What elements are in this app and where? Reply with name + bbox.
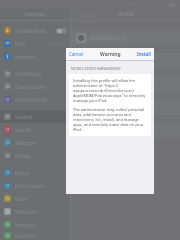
staticText: Sounds (15, 127, 31, 133)
staticText: iCloud (15, 170, 29, 176)
staticText: Installing this profile will allow the a… (73, 78, 147, 103)
button[interactable]: Do Not Disturb (0, 93, 70, 106)
button[interactable]: Control Center (0, 80, 70, 93)
staticText: The administrator may collect personal d… (73, 107, 147, 132)
button[interactable]: General (0, 110, 70, 123)
staticText: eduroam (49, 41, 67, 46)
staticText: Bluetooth (15, 54, 36, 60)
button[interactable]: Bluetooth (0, 50, 70, 63)
staticText: Do Not Disturb (15, 97, 47, 103)
button[interactable]: Cancel (66, 49, 87, 59)
staticText: Student iOS App Catalog/V_19 (90, 58, 154, 64)
button[interactable]: Airplane Mode (0, 24, 70, 37)
staticText: MOBILE DEVICE MANAGEMENT (71, 66, 121, 71)
staticText: Airplane Mode (15, 28, 46, 34)
button[interactable]: Notes (0, 192, 70, 205)
staticText: Profile (118, 11, 134, 18)
button[interactable]: Student iOS App Catalog/V_19 (71, 53, 180, 69)
staticText: General (15, 114, 32, 120)
button[interactable]: Sounds (0, 123, 70, 136)
button[interactable]: Wallpaper (0, 136, 70, 149)
staticText: Warning (100, 51, 121, 58)
staticText: Notifications (15, 71, 42, 77)
button[interactable]: iCloud (0, 166, 70, 179)
button[interactable]: Privacy (0, 149, 70, 162)
staticText: Mail, Contacts (15, 183, 45, 189)
staticText: MDM Profile/V_2 (90, 35, 126, 41)
button[interactable]: Mail, Contacts (0, 179, 70, 192)
button[interactable]: MDM Profile/V_2 (71, 30, 180, 46)
button[interactable]: Wi-Fi (0, 37, 70, 50)
staticText: Wallpaper (15, 140, 37, 146)
staticText: Notes (15, 196, 28, 202)
button[interactable] (71, 99, 180, 115)
staticText: Reminders (15, 209, 38, 215)
button[interactable]: Reminders (0, 205, 70, 218)
button[interactable]: Install (134, 49, 154, 59)
button[interactable]: Notifications (0, 67, 70, 80)
button[interactable]: Messages (0, 218, 70, 231)
button[interactable] (71, 76, 180, 92)
staticText: FaceTime (15, 233, 35, 239)
button[interactable]: FaceTime (0, 231, 70, 240)
button[interactable] (71, 122, 180, 138)
staticText: On (61, 54, 67, 59)
staticText: Settings (25, 11, 45, 18)
staticText: Control Center (15, 84, 46, 90)
staticText: Wi-Fi (15, 41, 26, 47)
staticText: Messages (15, 222, 36, 228)
staticText: Privacy (15, 153, 31, 159)
